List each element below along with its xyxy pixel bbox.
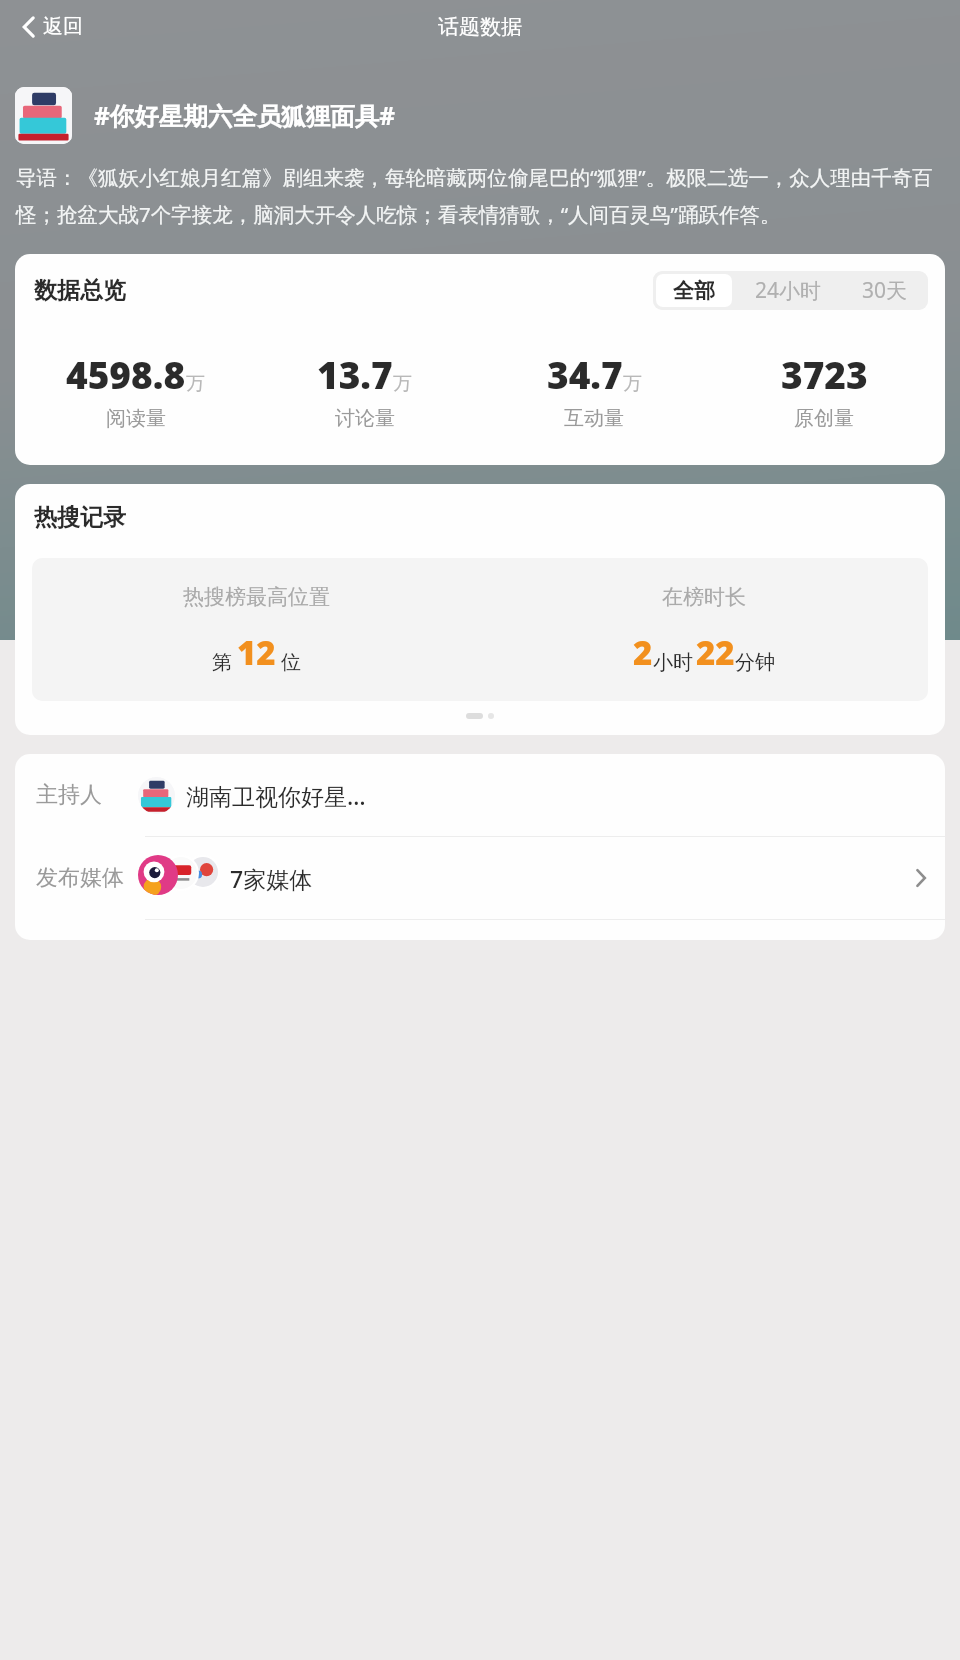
staticText: 24小时 — [755, 276, 822, 305]
staticText: 原创量 — [794, 406, 854, 431]
staticText: 话题数据 — [438, 14, 522, 40]
staticText: 互动量 — [564, 406, 624, 431]
staticText: 万 — [623, 372, 642, 396]
staticText: 3723 — [781, 349, 868, 399]
staticText: 2 — [633, 630, 653, 675]
staticText: 热搜记录 — [34, 503, 126, 532]
staticText: 12 — [237, 630, 276, 675]
button[interactable]: #你好星期六全员狐狸面具# — [15, 87, 945, 144]
staticText: 返回 — [43, 14, 83, 39]
staticText: 13.7 — [317, 349, 393, 399]
staticText: 热搜榜最高位置 — [183, 584, 330, 610]
staticText: 4598.8 — [66, 349, 186, 399]
button[interactable]: 30天 — [845, 274, 925, 307]
staticText: 阅读量 — [106, 406, 166, 431]
staticText: 万 — [393, 372, 412, 396]
button[interactable]: 热搜榜最高位置 — [32, 558, 928, 701]
staticText: 22 — [696, 630, 735, 675]
staticText: 万 — [186, 372, 205, 396]
staticText: 34.7 — [547, 349, 623, 399]
staticText: 30天 — [862, 276, 908, 305]
staticText: 导语：《狐妖小红娘月红篇》剧组来袭，每轮暗藏两位偷尾巴的“狐狸”。极限二选一，众… — [16, 163, 944, 228]
staticText: 7家媒体 — [230, 863, 313, 894]
other: 查看发布媒体 — [915, 867, 927, 889]
staticText: #你好星期六全员狐狸面具# — [94, 99, 396, 132]
button[interactable]: 返回 — [14, 10, 91, 43]
staticText: 在榜时长 — [662, 584, 746, 610]
staticText: 分钟 — [735, 650, 775, 675]
staticText: 第 — [212, 650, 232, 675]
button[interactable]: 发布媒体 — [15, 837, 945, 919]
staticText: 发布媒体 — [36, 864, 124, 892]
staticText: 讨论量 — [335, 406, 395, 431]
staticText: 全部 — [673, 278, 715, 304]
button[interactable]: 全部 — [656, 274, 732, 307]
staticText: 数据总览 — [34, 276, 126, 305]
staticText: 主持人 — [36, 781, 102, 809]
staticText: 小时 — [653, 650, 693, 675]
button[interactable]: 24小时 — [738, 274, 839, 307]
button[interactable]: 主持人 — [15, 754, 945, 836]
staticText: 湖南卫视你好星… — [186, 780, 366, 811]
staticText: 位 — [281, 650, 301, 675]
